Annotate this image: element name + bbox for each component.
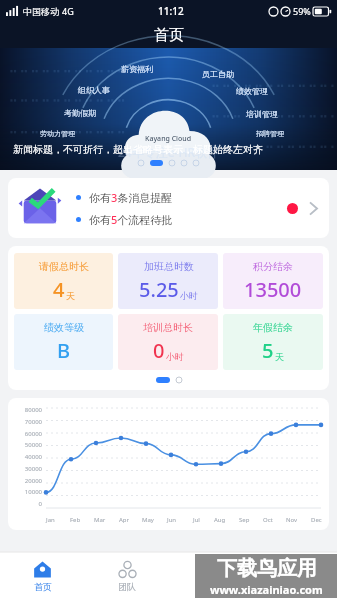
staticText: 首页	[154, 26, 184, 45]
staticText: Oct	[263, 516, 273, 524]
staticText: 员工自助	[202, 69, 234, 79]
staticText: 60000	[12, 430, 42, 438]
staticText: 5	[262, 337, 274, 364]
staticText: 积分结余	[253, 260, 293, 273]
staticText: 13500	[244, 276, 302, 303]
staticText: Mar	[94, 516, 106, 524]
staticText: 小时	[180, 290, 198, 301]
staticText: 新闻标题，不可折行，超出省略号表示，标题始终左对齐	[13, 143, 263, 156]
staticText: 4	[53, 276, 65, 303]
staticText: 团队	[118, 581, 136, 592]
staticText: 招聘管理	[256, 129, 284, 138]
button[interactable]: 绩效等级	[14, 314, 113, 370]
button[interactable]: 年假结余	[223, 314, 323, 370]
staticText: 30000	[12, 465, 42, 473]
staticText: 薪资福利	[121, 64, 153, 74]
button[interactable]: 首页	[0, 552, 85, 600]
staticText: 40000	[12, 453, 42, 461]
button[interactable]: 培训总时长	[118, 314, 218, 370]
staticText: 你有3条消息提醒	[89, 190, 173, 205]
staticText: 绩效管理	[236, 86, 268, 96]
staticText: 10000	[12, 488, 42, 496]
staticText: 我的	[286, 581, 304, 592]
staticText: 24年专注e-HR软件	[118, 144, 220, 160]
staticText: 绩效等级	[44, 321, 84, 334]
staticText: Sep	[239, 516, 250, 524]
staticText: 50000	[12, 441, 42, 449]
staticText: Dec	[311, 516, 322, 524]
staticText: 20000	[12, 477, 42, 485]
staticText: 5.25	[139, 276, 179, 303]
staticText: 你有5个流程待批	[89, 212, 173, 227]
staticText: 70000	[12, 418, 42, 426]
staticText: 中国移动	[23, 6, 59, 17]
staticText: 培训总时长	[143, 321, 193, 334]
staticText: 4G	[62, 5, 74, 17]
staticText: 0	[153, 337, 165, 364]
staticText: Feb	[70, 516, 81, 524]
button[interactable]: 请假总时长	[14, 253, 113, 309]
staticText: 年假结余	[253, 321, 293, 334]
staticText: Jan	[46, 516, 55, 524]
staticText: 天	[275, 351, 284, 362]
button[interactable]: 你有3条消息提醒	[8, 178, 329, 238]
staticText: 天	[66, 290, 75, 301]
staticText: 80000	[12, 406, 42, 414]
staticText: 11:12	[158, 4, 184, 18]
button[interactable]: 申请	[169, 552, 253, 600]
staticText: Jun	[167, 516, 177, 524]
staticText: 请假总时长	[39, 260, 89, 273]
staticText: 劳动力管理	[40, 129, 75, 138]
staticText: 小时	[166, 351, 184, 362]
staticText: 组织人事	[78, 85, 110, 95]
button[interactable]: 加班总时数	[118, 253, 218, 309]
staticText: 0	[12, 500, 42, 508]
staticText: B	[57, 337, 71, 364]
button[interactable]: 我的	[253, 552, 337, 600]
staticText: May	[142, 516, 154, 524]
button[interactable]: 团队	[85, 552, 169, 600]
staticText: 下载鸟应用	[217, 556, 317, 581]
staticText: 申请	[202, 581, 220, 592]
staticText: 加班总时数	[144, 260, 194, 273]
staticText: 培训管理	[246, 109, 278, 119]
button[interactable]: 积分结余	[223, 253, 323, 309]
staticText: Jul	[193, 516, 200, 524]
staticText: Kayang Cloud	[145, 134, 192, 144]
staticText: 59%	[293, 5, 311, 17]
staticText: 首页	[34, 581, 52, 592]
staticText: Nov	[286, 516, 298, 524]
staticText: Aug	[214, 516, 226, 524]
staticText: Apr	[119, 516, 130, 524]
staticText: 考勤假期	[64, 108, 96, 118]
staticText: www.xiazainiao.com	[210, 582, 323, 597]
